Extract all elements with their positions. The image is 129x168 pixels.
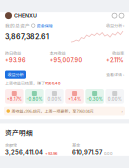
staticText: 上周收益已结算，赚了	[5, 80, 45, 86]
staticText: 查看详情 ›	[106, 72, 124, 77]
staticText: 周收益+996.48元，上周一项最新，至7960.04元	[11, 108, 93, 114]
button[interactable]: 周收益+996.48元，上周一项最新，至7960.04元	[4, 107, 125, 115]
button[interactable]: CHENXU	[5, 12, 37, 19]
staticText: 收益率	[112, 50, 124, 56]
button[interactable]: 0.00%	[45, 89, 64, 104]
button[interactable]: Settings	[119, 13, 124, 18]
button[interactable]: 收益分析	[5, 70, 26, 79]
staticText: 收益分析	[7, 71, 23, 78]
staticText: -0.30%	[87, 96, 103, 102]
staticText: +93.96	[45, 151, 57, 156]
button[interactable]: 余额宝	[5, 142, 63, 156]
staticText: +95,007.90	[49, 57, 82, 63]
staticText: +2.11%	[106, 57, 124, 63]
staticText: 资金保障	[36, 22, 52, 29]
button[interactable]: 收益分析 ›	[106, 22, 124, 29]
staticText: 0.00%	[108, 96, 122, 102]
staticText: 余额宝	[5, 142, 17, 148]
staticText: 收益分析 ›	[106, 22, 124, 29]
staticText: -0.80%	[26, 96, 42, 102]
staticText: ¥566.48	[45, 81, 61, 85]
staticText: 昨日收益	[5, 50, 21, 56]
staticText: 3,256,411.04	[5, 149, 43, 156]
staticText: 3,867,382.61	[5, 32, 49, 41]
staticText: +8.17%	[7, 96, 22, 102]
button[interactable]: 0.00%	[105, 89, 124, 104]
staticText: 我的总资产	[5, 22, 30, 29]
staticText: 基金	[72, 142, 80, 148]
staticText: +1.4%	[68, 96, 81, 102]
staticText: CHENXU	[14, 12, 37, 19]
button[interactable]: -0.30%	[85, 89, 104, 104]
staticText: +93.96	[5, 57, 26, 63]
button[interactable]: +1.4%	[65, 89, 84, 104]
button[interactable]: +8.17%	[5, 89, 24, 104]
button[interactable]: -0.80%	[25, 89, 44, 104]
button[interactable]: 查看详情 ›	[106, 72, 124, 77]
staticText: 本月收益	[49, 50, 65, 56]
staticText: 0.00%	[47, 96, 61, 102]
staticText: 0.00	[104, 151, 113, 156]
staticText: 610,971.57	[72, 149, 102, 156]
button[interactable]: 基金	[72, 142, 124, 156]
button[interactable]: Customer service	[112, 13, 117, 18]
staticText: 资产明细	[5, 127, 33, 137]
